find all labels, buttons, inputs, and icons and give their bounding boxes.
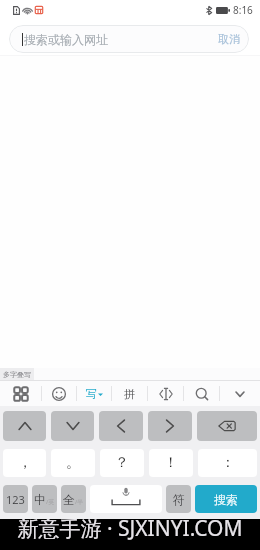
button[interactable]: 写	[77, 381, 111, 406]
button[interactable]: Left	[99, 411, 143, 441]
staticText: 写	[86, 387, 97, 401]
button[interactable]: 搜索或输入网址	[9, 25, 209, 53]
button[interactable]: Space, voice input	[90, 485, 162, 513]
button[interactable]: ：	[198, 449, 257, 477]
staticText: ：	[221, 454, 235, 472]
staticText: 8:16	[233, 3, 253, 17]
button[interactable]: Right	[148, 411, 192, 441]
button[interactable]: ！	[149, 449, 193, 477]
button[interactable]: Backspace	[197, 411, 257, 441]
staticText: 拼	[124, 387, 135, 401]
button[interactable]: 搜索	[195, 485, 257, 513]
button[interactable]: 符	[166, 485, 191, 513]
button[interactable]: ，	[3, 449, 46, 477]
staticText: 搜索	[214, 492, 238, 507]
button[interactable]: 拼	[112, 381, 147, 406]
button[interactable]: Search	[184, 381, 219, 406]
button[interactable]: Emoji	[42, 381, 76, 406]
staticText: 取消	[218, 32, 240, 46]
button[interactable]: Keyboard layouts	[0, 381, 41, 406]
button[interactable]: 中	[32, 485, 57, 513]
staticText: 中	[34, 492, 46, 507]
button[interactable]: 。	[51, 449, 95, 477]
staticText: 搜索或输入网址	[24, 32, 108, 47]
staticText: ！	[164, 454, 178, 472]
staticText: 多字叠写	[3, 370, 31, 379]
staticText: ，	[18, 454, 32, 472]
button[interactable]: 全	[61, 485, 86, 513]
button[interactable]: 123	[3, 485, 28, 513]
staticText: 符	[173, 492, 185, 507]
button[interactable]: 多字叠写	[0, 368, 34, 381]
staticText: 新意手游 · SJXINYI.COM	[17, 519, 243, 543]
button[interactable]: Move cursor	[148, 381, 183, 406]
staticText: 全	[63, 492, 75, 507]
button[interactable]: ？	[100, 449, 144, 477]
staticText: 123	[6, 492, 25, 507]
button[interactable]: 取消	[218, 25, 240, 53]
button[interactable]: Hide keyboard	[220, 381, 260, 406]
button[interactable]: Up	[3, 411, 46, 441]
staticText: 。	[66, 454, 80, 472]
staticText: /英	[46, 498, 55, 506]
staticText: /半	[75, 498, 84, 506]
button[interactable]: Down	[51, 411, 94, 441]
staticText: ？	[115, 454, 129, 472]
